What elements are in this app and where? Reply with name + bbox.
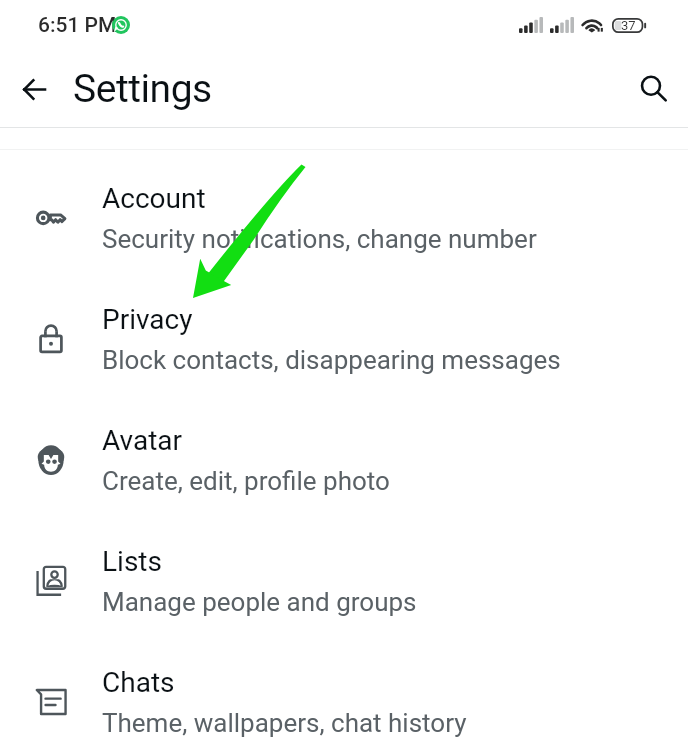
staticText: Theme, wallpapers, chat history <box>102 708 467 738</box>
staticText: Privacy <box>102 303 193 336</box>
staticText: Security notifications, change number <box>102 224 537 254</box>
button[interactable]: Back <box>10 65 58 113</box>
staticText: 37 <box>621 18 636 33</box>
staticText: Lists <box>102 545 162 578</box>
staticText: Settings <box>73 66 212 112</box>
button[interactable]: Avatar <box>0 399 688 520</box>
staticText: Manage people and groups <box>102 587 417 617</box>
staticText: 6:51 PM <box>38 13 117 38</box>
staticText: Create, edit, profile photo <box>102 466 390 496</box>
staticText: Chats <box>102 666 175 699</box>
button[interactable]: Account <box>0 157 688 278</box>
staticText: Avatar <box>102 424 183 457</box>
staticText: Block contacts, disappearing messages <box>102 345 561 375</box>
button[interactable]: Lists <box>0 520 688 641</box>
button[interactable]: Search <box>630 66 678 114</box>
button[interactable]: Chats <box>0 641 688 750</box>
button[interactable]: Privacy <box>0 278 688 399</box>
staticText: Account <box>102 182 206 215</box>
